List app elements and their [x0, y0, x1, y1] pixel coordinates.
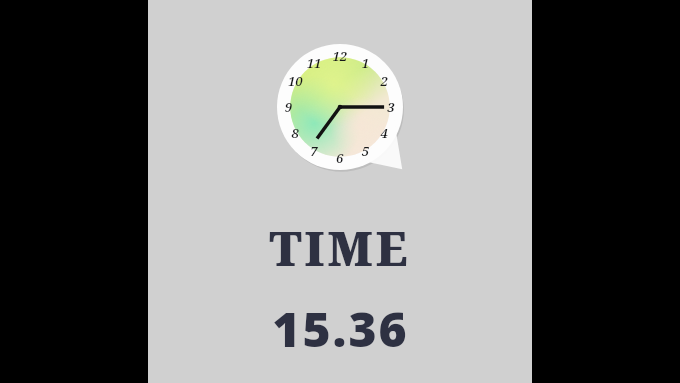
- staticText: TIME: [269, 216, 411, 280]
- staticText: 15.36: [272, 296, 409, 361]
